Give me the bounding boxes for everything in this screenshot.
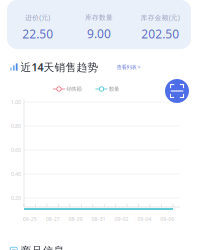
staticText: 22.50 (22, 26, 53, 42)
staticText: 商品信息 (21, 244, 65, 250)
staticText: 08-27 (46, 215, 60, 223)
staticText: 销售额 (66, 86, 81, 92)
staticText: 08-25 (23, 215, 37, 223)
staticText: 数量 (109, 86, 119, 92)
staticText: 库存金额(元) (141, 13, 180, 22)
staticText: 08-31 (91, 215, 105, 223)
staticText: 库存数量 (85, 13, 113, 22)
staticText: 0.40 (11, 170, 21, 178)
staticText: 0.60 (11, 146, 21, 154)
staticText: 09-04 (137, 215, 151, 223)
button[interactable]: 查看列表 > (99, 59, 141, 75)
staticText: 9.00 (87, 26, 111, 41)
staticText: 08-29 (69, 215, 83, 223)
staticText: 09-02 (114, 215, 128, 223)
staticText: 近14天销售趋势 (21, 60, 99, 74)
staticText: 0.80 (11, 122, 21, 130)
staticText: 查看列表 > (117, 63, 141, 71)
staticText: 202.50 (141, 26, 179, 42)
staticText: 0.20 (11, 194, 21, 202)
staticText: 1.00 (11, 98, 21, 106)
button[interactable]: 扫码 (165, 79, 189, 103)
staticText: 09-06 (160, 215, 174, 223)
staticText: 进价(元) (25, 13, 50, 22)
